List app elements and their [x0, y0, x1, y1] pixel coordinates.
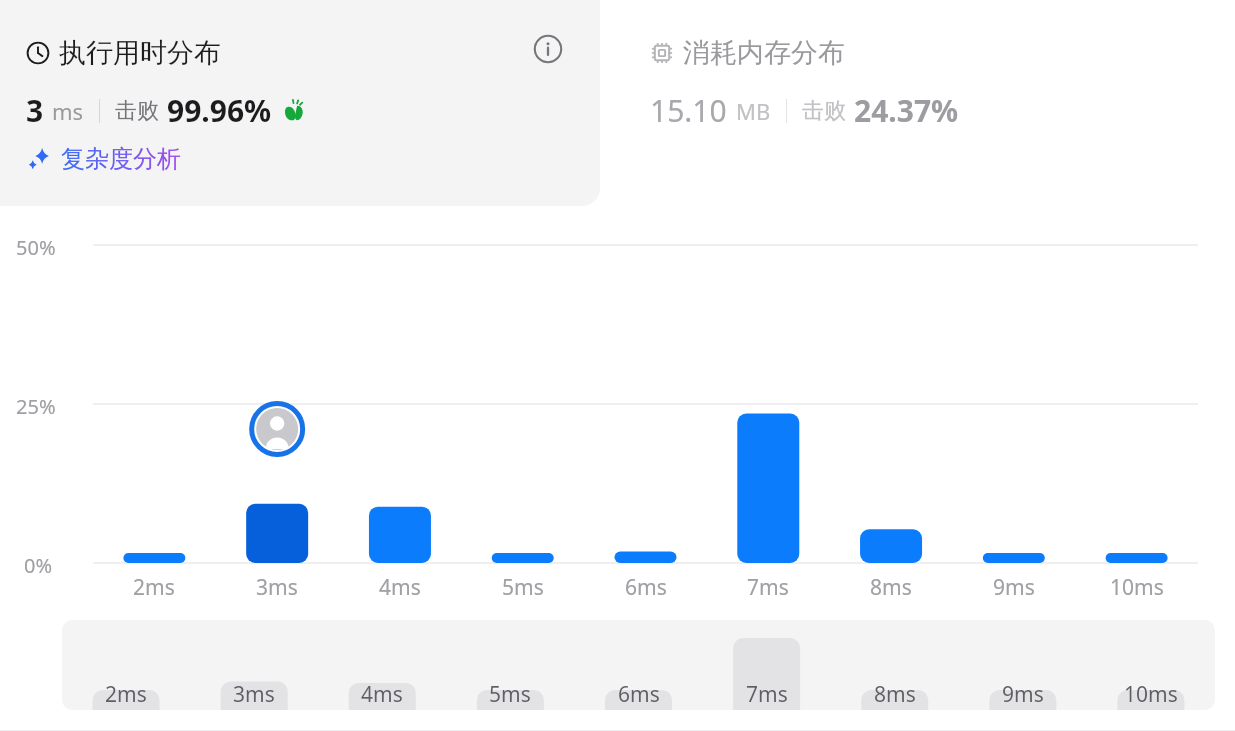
- staticText: 3: [26, 90, 44, 131]
- staticText: 99.96%: [167, 90, 272, 131]
- button[interactable]: 9ms: [980, 573, 1048, 602]
- staticText: 9ms: [1002, 680, 1044, 709]
- button[interactable]: 3ms: [243, 573, 311, 602]
- staticText: 15.10: [650, 90, 727, 131]
- button[interactable]: 复杂度分析: [26, 144, 181, 174]
- staticText: 2ms: [105, 680, 147, 709]
- staticText: 7ms: [747, 573, 789, 602]
- staticText: 消耗内存分布: [683, 36, 845, 70]
- staticText: 25%: [16, 393, 56, 420]
- staticText: 0%: [24, 552, 53, 579]
- staticText: 50%: [16, 234, 56, 261]
- button[interactable]: 6ms: [612, 573, 680, 602]
- staticText: ms: [52, 96, 84, 126]
- staticText: MB: [736, 96, 771, 126]
- button[interactable]: 8ms: [857, 573, 925, 602]
- button[interactable]: 10ms: [1103, 573, 1171, 602]
- staticText: 4ms: [361, 680, 403, 709]
- button[interactable]: 7ms: [734, 573, 802, 602]
- staticText: 6ms: [625, 573, 667, 602]
- staticText: 执行用时分布: [59, 36, 221, 70]
- button[interactable]: 4ms: [366, 573, 434, 602]
- staticText: 击败: [802, 97, 846, 125]
- staticText: 2ms: [133, 573, 175, 602]
- staticText: 5ms: [489, 680, 531, 709]
- staticText: 9ms: [993, 573, 1035, 602]
- staticText: 4ms: [379, 573, 421, 602]
- button[interactable]: 2ms: [62, 620, 1215, 710]
- staticText: 8ms: [870, 573, 912, 602]
- staticText: 击败: [115, 97, 159, 125]
- button[interactable]: 5ms: [489, 573, 557, 602]
- staticText: 8ms: [874, 680, 916, 709]
- staticText: 3ms: [256, 573, 298, 602]
- staticText: 10ms: [1110, 573, 1164, 602]
- button[interactable]: 执行用时分布: [0, 0, 600, 206]
- staticText: 6ms: [618, 680, 660, 709]
- staticText: 5ms: [502, 573, 544, 602]
- staticText: 7ms: [746, 680, 788, 709]
- button[interactable]: Info: [531, 32, 565, 66]
- staticText: 24.37%: [854, 90, 959, 131]
- staticText: 复杂度分析: [61, 144, 181, 174]
- staticText: 3ms: [233, 680, 275, 709]
- staticText: 10ms: [1124, 680, 1178, 709]
- button[interactable]: 2ms: [120, 573, 188, 602]
